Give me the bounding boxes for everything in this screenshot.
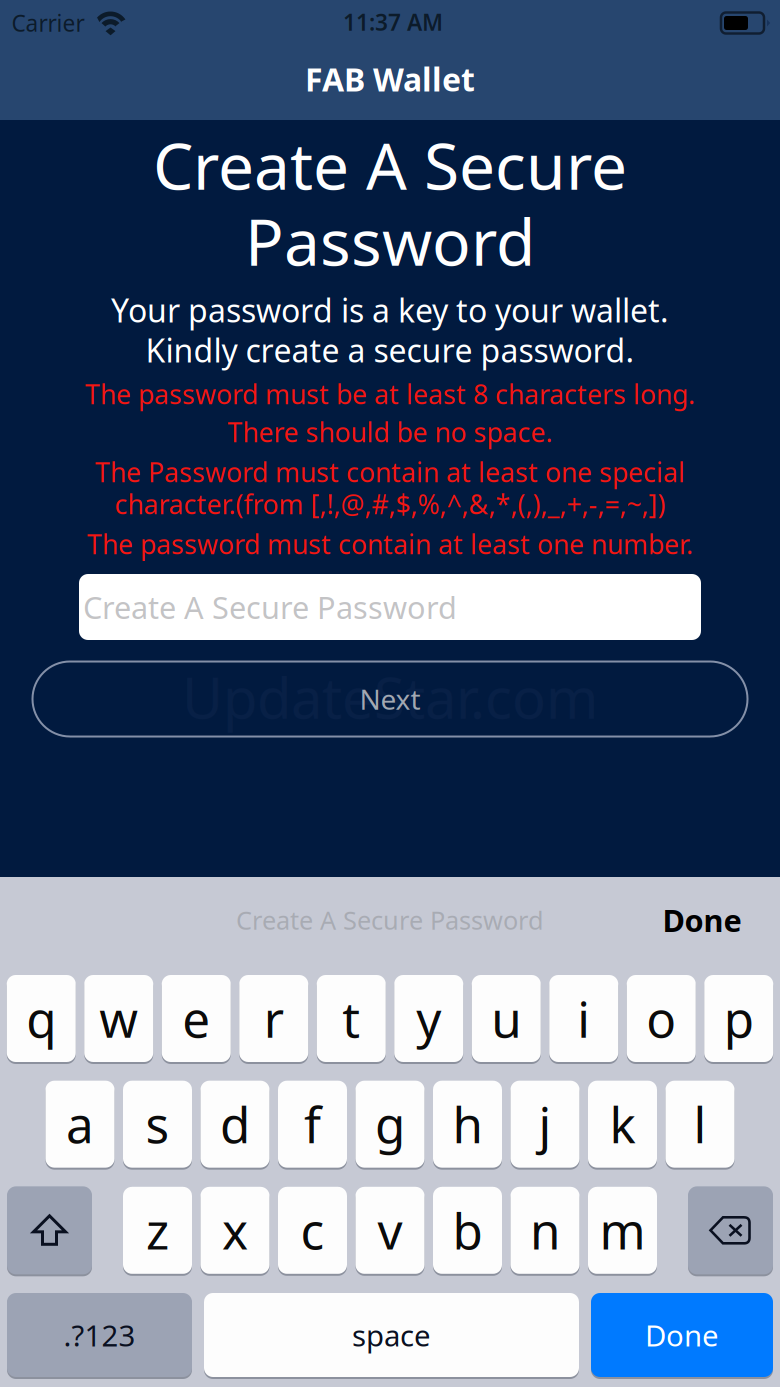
button[interactable]: y [394,975,463,1062]
button[interactable]: p [704,975,773,1062]
staticText: g [375,1091,405,1157]
staticText: The password must contain at least one n… [87,526,693,562]
button[interactable]: x [200,1187,269,1274]
button[interactable]: Next [32,661,747,736]
staticText: character.(from [,!,@,#,$,%,^,&,*,(,),_,… [114,486,665,522]
button[interactable]: q [7,975,76,1062]
button[interactable]: z [123,1187,192,1274]
staticText: s [145,1091,169,1157]
staticText: Kindly create a secure password. [145,329,634,371]
staticText: l [693,1091,706,1157]
button[interactable]: k [588,1081,657,1168]
staticText: b [452,1198,482,1263]
button[interactable]: v [355,1187,424,1274]
staticText: Carrier [11,8,84,38]
staticText: h [452,1091,482,1157]
button[interactable]: g [355,1081,424,1168]
button[interactable]: m [588,1187,657,1274]
button[interactable]: s [123,1081,192,1168]
staticText: n [530,1198,560,1263]
staticText: y [416,986,441,1051]
button[interactable]: space [204,1293,579,1377]
staticText: e [182,986,210,1051]
staticText: There should be no space. [227,414,552,450]
button[interactable]: Shift [7,1186,92,1274]
staticText: d [220,1091,250,1157]
staticText: x [222,1198,248,1263]
staticText: k [609,1091,635,1157]
button[interactable]: Done [646,888,757,952]
staticText: Password [245,198,535,283]
staticText: t [342,986,360,1051]
staticText: u [491,986,521,1051]
button[interactable]: Done [591,1293,773,1377]
button[interactable]: r [239,975,308,1062]
button[interactable]: a [45,1081,114,1168]
staticText: i [577,986,590,1051]
staticText: space [352,1315,431,1354]
button[interactable]: l [665,1081,734,1168]
staticText: j [538,1091,551,1157]
button[interactable]: b [433,1187,502,1274]
staticText: Your password is a key to your wallet. [111,289,669,331]
button[interactable]: h [433,1081,502,1168]
staticText: q [26,986,56,1051]
button[interactable]: o [627,975,696,1062]
button[interactable]: t [317,975,386,1062]
button[interactable]: d [200,1081,269,1168]
button[interactable]: c [278,1187,347,1274]
button[interactable]: j [510,1081,579,1168]
button[interactable]: e [162,975,231,1062]
staticText: r [264,986,284,1051]
staticText: z [146,1198,169,1263]
staticText: m [599,1198,645,1263]
staticText: FAB Wallet [305,58,475,100]
staticText: w [99,986,138,1051]
staticText: .?123 [63,1315,135,1354]
staticText: Create A Secure [153,122,627,207]
staticText: Create A Secure Password [236,903,544,937]
staticText: p [724,986,754,1051]
button[interactable]: n [510,1187,579,1274]
staticText: The Password must contain at least one s… [95,454,685,490]
staticText: Done [645,1315,719,1354]
staticText: Next [359,680,420,718]
staticText: f [304,1091,321,1157]
staticText: v [377,1198,402,1263]
button[interactable]: f [278,1081,347,1168]
button[interactable]: i [549,975,618,1062]
staticText: UpdateStar.com [182,660,598,734]
staticText: The password must be at least 8 characte… [85,376,695,412]
staticText: Done [662,900,741,940]
button[interactable]: Delete [688,1186,773,1274]
button[interactable]: w [84,975,153,1062]
staticText: o [646,986,676,1051]
button[interactable]: .?123 [7,1293,192,1377]
staticText: a [66,1091,94,1157]
button[interactable]: u [472,975,541,1062]
staticText: c [300,1198,324,1263]
staticText: Create A Secure Password [83,587,457,627]
staticText: 11:37 AM [343,7,443,37]
